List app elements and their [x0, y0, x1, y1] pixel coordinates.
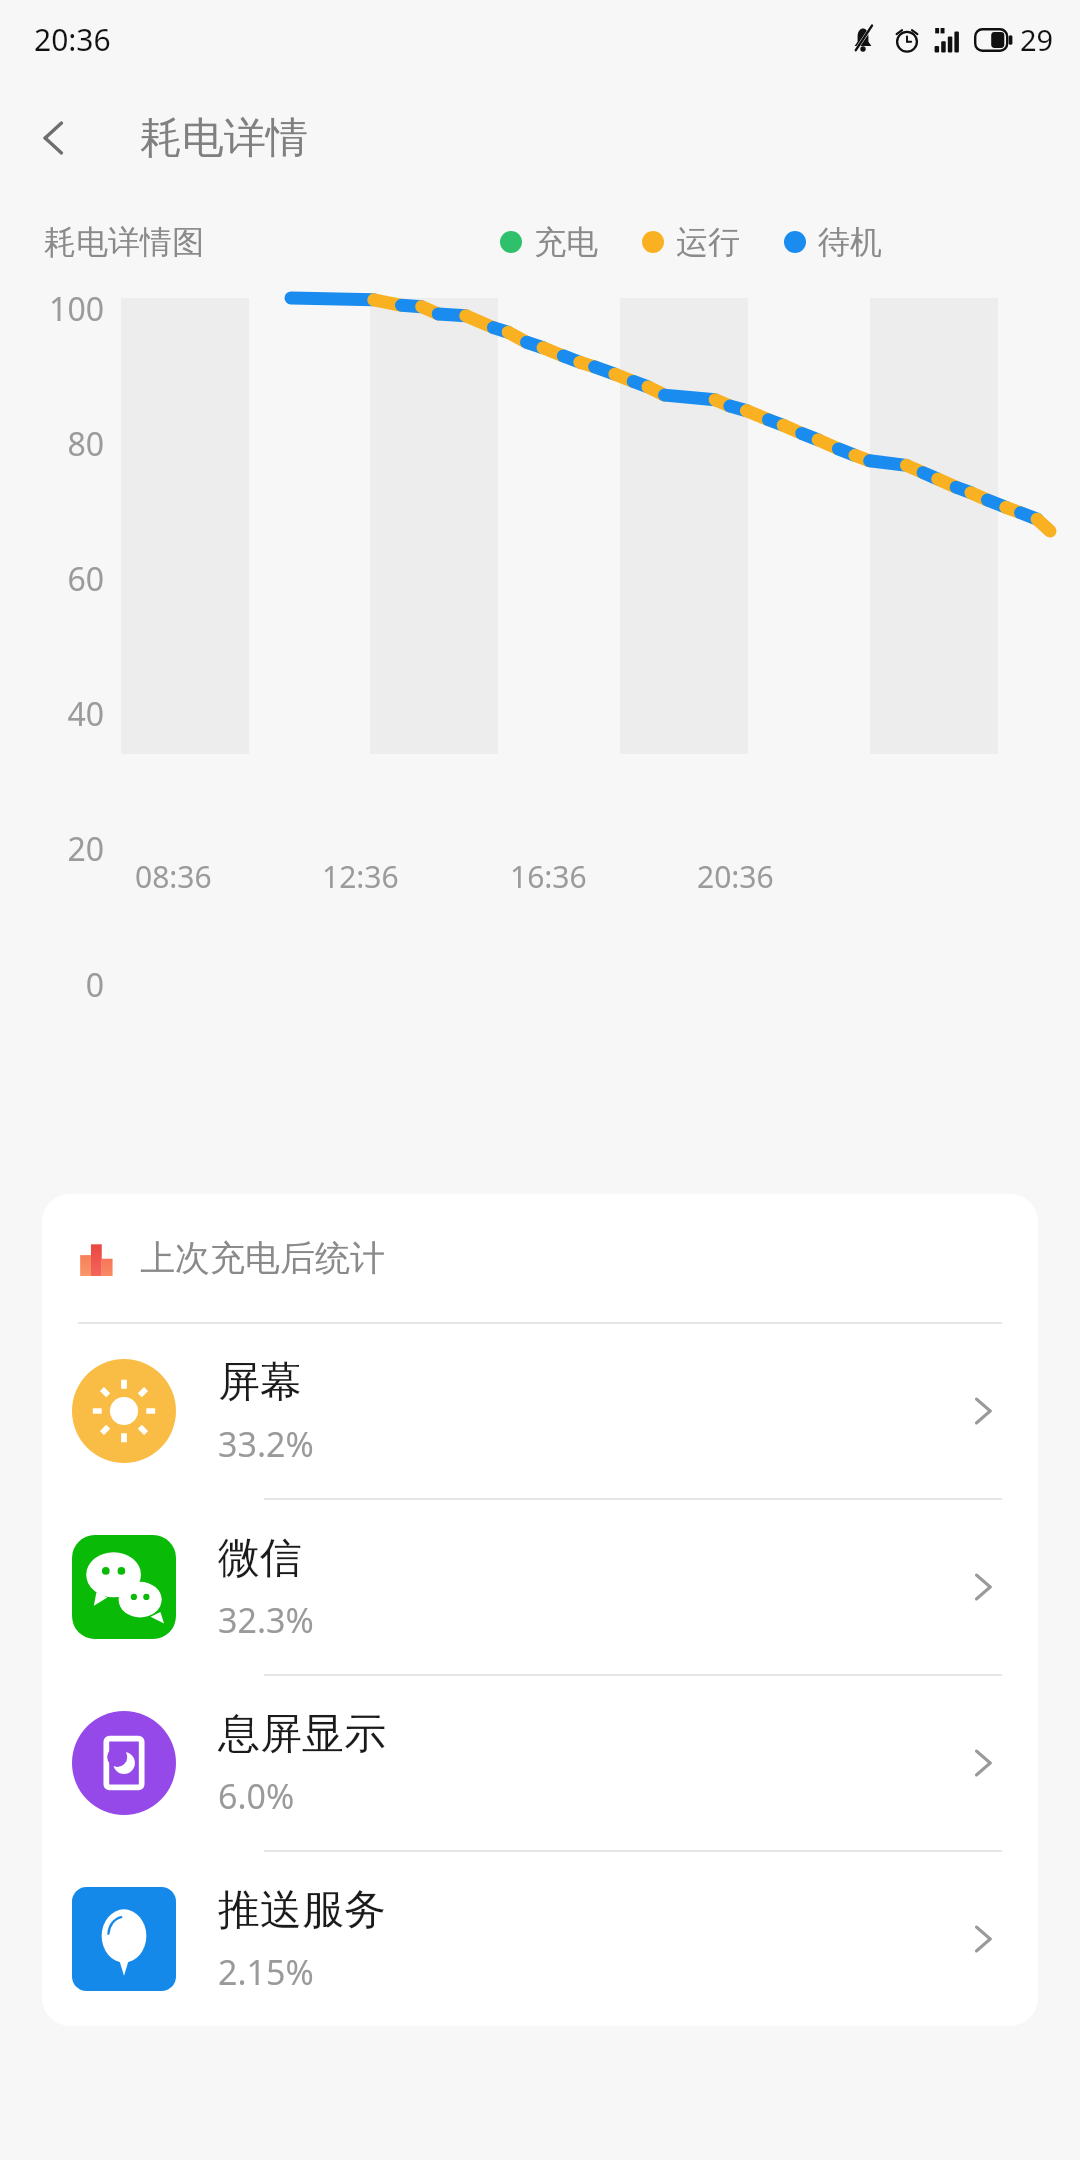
- staticText: 0: [0, 963, 104, 1007]
- button[interactable]: Back: [18, 102, 90, 174]
- staticText: 16:36: [510, 856, 587, 897]
- staticText: 屏幕: [218, 1356, 302, 1409]
- button[interactable]: 息屏显示: [42, 1676, 1038, 1852]
- staticText: 上次充电后统计: [140, 1236, 385, 1280]
- staticText: 80: [0, 422, 104, 466]
- staticText: 32.3%: [218, 1597, 314, 1643]
- staticText: 60: [0, 557, 104, 601]
- staticText: 29: [1020, 20, 1054, 59]
- staticText: 20:36: [34, 19, 111, 60]
- staticText: 12:36: [322, 856, 399, 897]
- staticText: 2.15%: [218, 1949, 314, 1995]
- staticText: 息屏显示: [218, 1708, 386, 1761]
- button[interactable]: 推送服务: [42, 1852, 1038, 2026]
- staticText: 20:36: [697, 856, 774, 897]
- staticText: 08:36: [135, 856, 212, 897]
- staticText: 耗电详情图: [44, 222, 204, 262]
- staticText: 6.0%: [218, 1773, 295, 1819]
- staticText: 微信: [218, 1532, 302, 1585]
- button[interactable]: 屏幕: [42, 1324, 1038, 1500]
- staticText: 待机: [818, 222, 882, 262]
- button[interactable]: 微信: [42, 1500, 1038, 1676]
- staticText: 100: [0, 287, 104, 331]
- staticText: 运行: [676, 222, 740, 262]
- staticText: 33.2%: [218, 1421, 314, 1467]
- staticText: 20: [0, 827, 104, 871]
- staticText: 耗电详情: [140, 112, 308, 165]
- staticText: 充电: [534, 222, 598, 262]
- staticText: 推送服务: [218, 1884, 386, 1937]
- staticText: 40: [0, 692, 104, 736]
